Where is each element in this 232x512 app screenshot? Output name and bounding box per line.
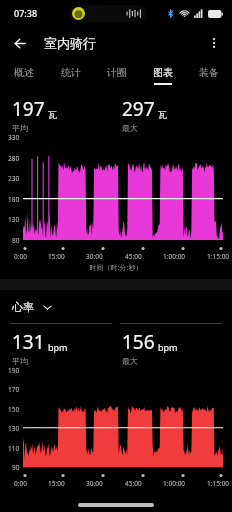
staticText: 30:00: [86, 479, 103, 488]
button[interactable]: 概述: [0, 60, 47, 90]
staticText: 1:00:00: [163, 252, 186, 261]
staticText: 190: [8, 366, 20, 375]
staticText: 计圈: [107, 66, 127, 79]
staticText: 297: [122, 96, 155, 122]
staticText: 230: [8, 174, 20, 183]
button[interactable]: 装备: [186, 60, 232, 90]
staticText: 156: [122, 329, 155, 355]
staticText: 最大: [122, 123, 138, 133]
button[interactable]: 计圈: [94, 60, 140, 90]
staticText: 瓦: [48, 109, 57, 120]
staticText: 30:00: [86, 252, 103, 261]
staticText: 45:00: [125, 479, 142, 488]
button[interactable]: More options: [200, 29, 228, 57]
staticText: 时间（时:分:秒）: [0, 263, 232, 273]
staticText: 平均: [12, 356, 28, 366]
staticText: 45:00: [125, 252, 142, 261]
staticText: 170: [8, 385, 20, 394]
staticText: 15:00: [48, 252, 65, 261]
staticText: 装备: [199, 66, 219, 79]
staticText: 280: [8, 154, 20, 163]
staticText: 110: [8, 444, 20, 453]
staticText: 瓦: [158, 109, 167, 120]
staticText: 0:00: [14, 252, 27, 261]
staticText: 概述: [14, 66, 34, 79]
staticText: 180: [8, 195, 20, 204]
staticText: 150: [8, 405, 20, 414]
staticText: 07:38: [14, 7, 38, 19]
staticText: 心率: [12, 300, 34, 314]
staticText: 90: [12, 463, 20, 472]
button[interactable]: 图表: [140, 60, 186, 90]
staticText: 最大: [122, 356, 138, 366]
button[interactable]: Back: [6, 29, 34, 57]
staticText: 131: [12, 329, 45, 355]
staticText: 0:00: [14, 479, 27, 488]
staticText: bpm: [158, 341, 178, 353]
staticText: 统计: [61, 66, 81, 79]
staticText: 80: [12, 236, 20, 245]
staticText: 1:15:00: [207, 479, 230, 488]
button[interactable]: 统计: [47, 60, 94, 90]
staticText: 130: [8, 424, 20, 433]
staticText: 1:15:00: [207, 252, 230, 261]
button[interactable]: 心率: [12, 300, 232, 314]
staticText: 1:00:00: [163, 479, 186, 488]
staticText: 室内骑行: [44, 35, 96, 51]
staticText: 330: [8, 133, 20, 142]
staticText: 130: [8, 215, 20, 224]
staticText: bpm: [48, 341, 68, 353]
staticText: 图表: [153, 66, 173, 79]
staticText: 197: [12, 96, 45, 122]
staticText: 15:00: [48, 479, 65, 488]
staticText: 平均: [12, 123, 28, 133]
